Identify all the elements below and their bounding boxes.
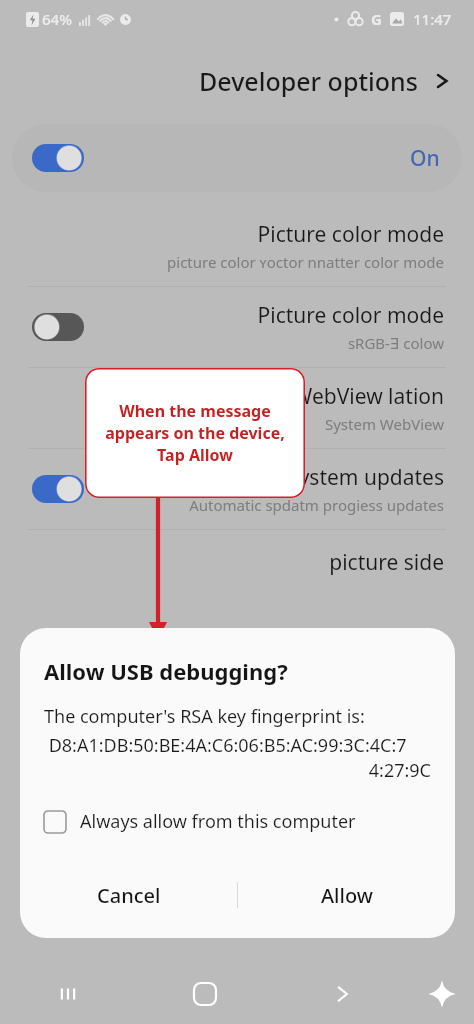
staticText: WebView lation <box>292 382 444 411</box>
staticText: 4:27:9C <box>44 758 431 783</box>
staticText: picture color ʏoctor nnatter color mode <box>167 252 444 272</box>
button[interactable]: Allow <box>238 852 455 938</box>
staticText: Allow <box>321 882 373 909</box>
button[interactable]: Back <box>273 964 410 1024</box>
staticText: Picture color mode <box>257 301 444 330</box>
staticText: sRGB-ꓱ colow <box>347 333 444 353</box>
staticText: Cancel <box>97 882 161 909</box>
staticText: Developer options <box>199 64 418 98</box>
staticText: Automatic system updates <box>181 463 444 492</box>
staticText: picture side <box>329 548 444 577</box>
staticText: Picture color mode <box>257 220 444 249</box>
staticText: Automatic spdatm progiess updates <box>189 495 444 515</box>
button[interactable]: Assistant <box>410 964 474 1024</box>
button[interactable]: Automatic system updates <box>0 449 474 529</box>
button[interactable]: Always allow from this computer <box>44 809 431 834</box>
staticText: 64% <box>42 9 72 29</box>
button[interactable]: When the message appears on the device, … <box>85 368 305 498</box>
staticText: Always allow from this computer <box>80 809 356 834</box>
staticText: The computer's RSA key fingerprint is: <box>44 704 365 729</box>
button[interactable]: picture side <box>0 530 474 594</box>
button[interactable]: Picture color mode <box>0 287 474 367</box>
button[interactable]: Home <box>136 964 273 1024</box>
button[interactable]: WebView lation <box>0 368 474 448</box>
staticText: When the message appears on the device, … <box>105 400 285 466</box>
button[interactable]: Recents <box>0 964 136 1024</box>
staticText: On <box>410 144 440 173</box>
staticText: D8:A1:DB:50:BE:4A:C6:06:B5:AC:99:3C:4C:7 <box>44 733 407 758</box>
staticText: G <box>371 9 382 29</box>
button[interactable]: Cancel <box>20 852 237 938</box>
staticText: System WebView <box>324 414 444 434</box>
staticText: Allow USB debugging? <box>44 656 288 686</box>
button[interactable]: Picture color mode <box>0 206 474 286</box>
button[interactable]: Developer options <box>0 64 452 98</box>
button[interactable]: On <box>12 124 462 192</box>
staticText: 11:47 <box>413 9 452 29</box>
